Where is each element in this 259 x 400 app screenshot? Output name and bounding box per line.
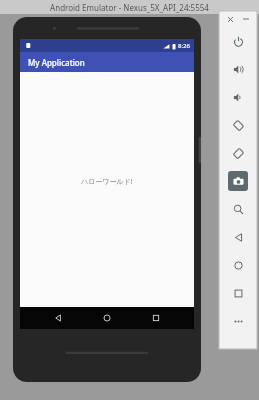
button[interactable]: Recent apps <box>145 307 167 329</box>
button[interactable]: Take screenshot <box>219 167 257 195</box>
button[interactable]: Zoom <box>219 195 257 223</box>
button[interactable]: Minimize <box>240 13 252 25</box>
staticText: 8:26 <box>178 42 190 50</box>
staticText: ハローワールド! <box>81 177 133 187</box>
button[interactable]: Volume up <box>219 55 257 83</box>
button[interactable]: Rotate left <box>219 111 257 139</box>
button[interactable]: Back <box>219 223 257 251</box>
button[interactable]: Recent apps <box>219 279 257 307</box>
button[interactable]: My Application <box>20 52 194 72</box>
button[interactable]: Home <box>219 251 257 279</box>
staticText: My Application <box>28 57 85 68</box>
staticText: Android Emulator - Nexus_5X_API_24:5554 <box>50 2 209 13</box>
button[interactable]: Power <box>219 27 257 55</box>
button[interactable]: Home <box>96 307 118 329</box>
button[interactable]: Rotate right <box>219 139 257 167</box>
button[interactable]: Close <box>224 13 236 25</box>
button[interactable]: More <box>219 307 257 335</box>
button[interactable]: Back <box>47 307 69 329</box>
button[interactable]: Volume down <box>219 83 257 111</box>
